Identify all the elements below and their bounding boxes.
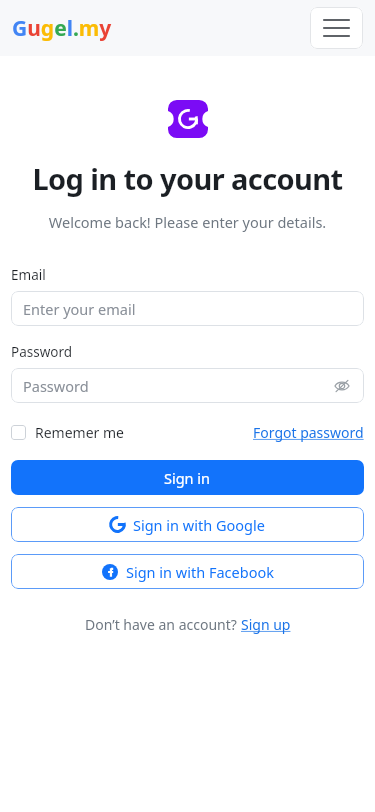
staticText: Welcome back! Please enter your details. (0, 212, 375, 232)
staticText: Sign in (164, 468, 211, 488)
staticText: Email (11, 266, 46, 284)
staticText: Gugel.my (12, 14, 112, 43)
button[interactable]: Show password (332, 376, 352, 396)
button[interactable]: Open menu (310, 7, 363, 49)
button[interactable]: Rememer me (11, 423, 124, 442)
staticText: Rememer me (35, 423, 124, 442)
button[interactable]: Enter your email (11, 291, 364, 326)
button[interactable]: Sign in with Facebook (11, 554, 364, 589)
button[interactable]: Sign up (241, 615, 291, 634)
staticText: Sign in with Google (133, 515, 265, 535)
staticText: Sign up (241, 615, 291, 634)
button[interactable]: Sign in with Google (11, 507, 364, 542)
button[interactable]: Gugel.my (12, 14, 112, 43)
staticText: Sign in with Facebook (126, 562, 274, 582)
staticText: Enter your email (23, 299, 352, 319)
staticText: Password (23, 376, 332, 396)
staticText: Don’t have an account? (85, 615, 241, 634)
button[interactable]: Forgot password (253, 423, 364, 442)
button[interactable]: Sign in (11, 460, 364, 495)
staticText: Forgot password (253, 423, 364, 442)
staticText: Password (11, 343, 73, 361)
button[interactable]: Password (11, 368, 364, 403)
staticText: Log in to your account (0, 159, 375, 198)
